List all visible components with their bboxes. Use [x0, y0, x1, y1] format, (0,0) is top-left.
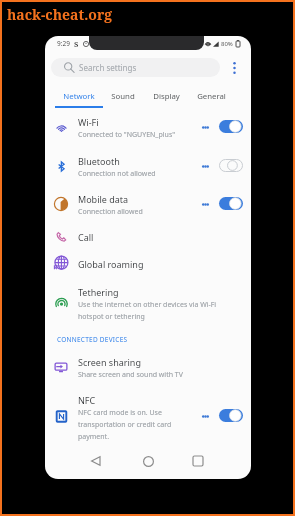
- staticText: 9:29: [57, 39, 70, 48]
- staticText: Bluetooth: [78, 155, 120, 167]
- button[interactable]: Search settings: [51, 58, 220, 77]
- staticText: Mobile data: [78, 193, 129, 205]
- staticText: NFC: [78, 394, 96, 406]
- button[interactable]: Bluetooth: [45, 149, 251, 182]
- staticText: Connection not allowed: [78, 169, 156, 179]
- button[interactable]: Recents: [187, 450, 209, 472]
- staticText: hack-cheat.org: [7, 5, 113, 24]
- button[interactable]: Toggle Wi-Fi: [219, 120, 243, 133]
- staticText: Screen sharing: [78, 356, 141, 368]
- staticText: S: [74, 39, 79, 49]
- button[interactable]: More options for Mobile data: [197, 198, 214, 210]
- button[interactable]: Toggle Mobile data: [219, 197, 243, 210]
- staticText: Tethering: [78, 286, 119, 298]
- button[interactable]: More options for Bluetooth: [197, 160, 214, 172]
- staticText: Use the internet on other devices via Wi…: [78, 300, 217, 310]
- staticText: Network: [63, 91, 95, 102]
- staticText: Connection allowed: [78, 207, 143, 217]
- button[interactable]: NFC: [45, 388, 251, 443]
- button[interactable]: Mobile data: [45, 187, 251, 220]
- staticText: payment.: [78, 432, 110, 442]
- staticText: Call: [78, 231, 94, 243]
- button[interactable]: Toggle Bluetooth: [219, 159, 243, 172]
- button[interactable]: More options for NFC: [197, 410, 214, 422]
- button[interactable]: Call: [45, 225, 251, 247]
- button[interactable]: Back: [85, 450, 107, 472]
- button[interactable]: General: [187, 88, 235, 112]
- button[interactable]: Sound: [99, 88, 147, 112]
- button[interactable]: Toggle NFC: [219, 409, 243, 422]
- staticText: NFC card mode is on. Use: [78, 408, 162, 418]
- button[interactable]: Wi-Fi: [45, 110, 251, 143]
- staticText: CONNECTED DEVICES: [57, 335, 128, 344]
- staticText: Display: [153, 91, 180, 102]
- staticText: Connected to "NGUYEN_plus": [78, 130, 176, 140]
- button[interactable]: Tethering: [45, 280, 251, 324]
- staticText: transportation or credit card: [78, 420, 172, 430]
- button[interactable]: More options: [223, 58, 246, 77]
- button[interactable]: Home: [137, 450, 159, 472]
- button[interactable]: Global roaming: [45, 252, 251, 274]
- staticText: Search settings: [79, 62, 137, 73]
- button[interactable]: Screen sharing: [45, 350, 251, 383]
- staticText: Share screen and sound with TV: [78, 370, 183, 380]
- staticText: Global roaming: [78, 258, 144, 270]
- staticText: General: [197, 91, 226, 102]
- staticText: hotspot or tethering: [78, 312, 145, 322]
- staticText: Wi-Fi: [78, 116, 99, 128]
- button[interactable]: Display: [142, 88, 190, 112]
- staticText: 80%: [221, 40, 233, 48]
- staticText: Sound: [111, 91, 135, 102]
- button[interactable]: More options for Wi-Fi: [197, 121, 214, 133]
- button[interactable]: Network: [55, 88, 103, 112]
